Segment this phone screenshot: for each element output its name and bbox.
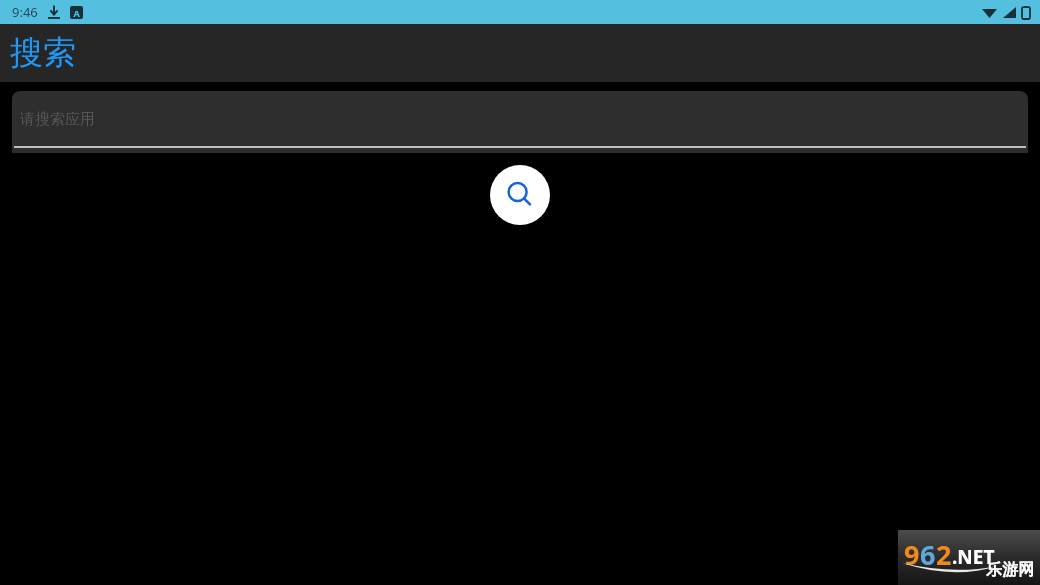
- staticText: 6: [920, 536, 936, 573]
- staticText: 搜索: [10, 32, 76, 74]
- staticText: 9: [904, 536, 920, 573]
- staticText: .NET: [952, 544, 995, 570]
- button[interactable]: 请搜索应用: [12, 91, 1028, 153]
- staticText: 2: [936, 536, 952, 573]
- button[interactable]: Search: [490, 165, 550, 225]
- staticText: A: [73, 7, 80, 19]
- staticText: 请搜索应用: [20, 110, 95, 129]
- staticText: 9:46: [12, 3, 38, 21]
- staticText: 乐游网: [986, 560, 1034, 580]
